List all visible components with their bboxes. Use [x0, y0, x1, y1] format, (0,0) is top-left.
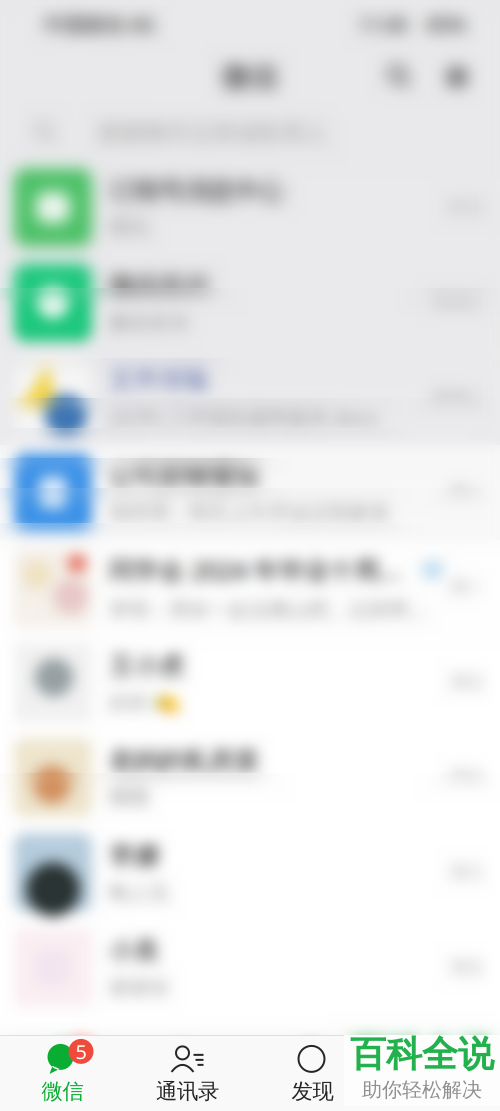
- staticText: 星期二: [433, 387, 484, 408]
- button[interactable]: 搜索聊天记录或联系人: [0, 106, 500, 160]
- staticText: 微信支付: [109, 310, 189, 335]
- staticText: [文件] 工作报告最终版本.docx: [109, 404, 378, 431]
- button[interactable]: 文件传输: [0, 350, 500, 445]
- button[interactable]: 微信支付: [0, 255, 500, 350]
- staticText: 周日: [450, 767, 484, 788]
- staticText: 嗯嗯: [109, 785, 149, 810]
- staticText: 腾讯: [109, 215, 149, 240]
- staticText: 李娜: [109, 840, 159, 871]
- staticText: 周一: [450, 482, 484, 503]
- staticText: 好的 🍋: [109, 690, 180, 715]
- staticText: 小美: [109, 935, 159, 966]
- staticText: 订阅号消息中心: [109, 175, 284, 206]
- staticText: 老妈的私房菜: [109, 745, 259, 776]
- button[interactable]: 通讯录: [125, 1036, 250, 1111]
- button[interactable]: 同学会 2024 年毕业十周年聚会: [0, 540, 500, 635]
- button[interactable]: 5: [0, 1036, 125, 1111]
- staticText: 谢谢你: [109, 975, 169, 1000]
- staticText: 文件传输: [109, 364, 209, 395]
- staticText: 张经理：明天上午开会记得参加: [109, 500, 389, 525]
- staticText: 助你轻松解决: [362, 1077, 482, 1102]
- button[interactable]: 订阅号消息中心: [0, 160, 500, 255]
- button[interactable]: Search: [382, 60, 416, 94]
- staticText: 通讯录: [156, 1078, 219, 1105]
- button[interactable]: 李娜: [0, 825, 500, 920]
- staticText: 周六: [450, 862, 484, 883]
- button[interactable]: 公司群聊通知: [0, 445, 500, 540]
- staticText: 周一: [450, 577, 484, 598]
- staticText: 发现: [291, 1078, 333, 1105]
- button[interactable]: 王小虎: [0, 635, 500, 730]
- staticText: 5: [75, 1038, 86, 1065]
- button[interactable]: 小美: [0, 920, 500, 1015]
- staticText: 同学会 2024 年毕业十周年聚会: [109, 553, 417, 587]
- button[interactable]: 老妈的私房菜: [0, 730, 500, 825]
- staticText: 微信: [41, 1078, 83, 1105]
- staticText: 晚上见: [109, 880, 169, 905]
- button[interactable]: 我: [375, 1036, 500, 1111]
- staticText: 中国移动 4G: [44, 11, 155, 37]
- staticText: 我: [427, 1078, 448, 1105]
- staticText: 微信支付: [109, 270, 209, 301]
- button[interactable]: 发现: [250, 1036, 375, 1111]
- staticText: 微信: [222, 60, 278, 94]
- staticText: 百科全说: [350, 1032, 494, 1076]
- staticText: 11:40 85%: [358, 11, 466, 37]
- staticText: 公司群聊通知: [109, 460, 259, 491]
- staticText: 周日: [450, 672, 484, 693]
- staticText: 李明：周末一起去爬山吧，记得带装备: [109, 596, 442, 622]
- staticText: 周五: [450, 957, 484, 978]
- staticText: 搜索聊天记录或联系人: [98, 119, 328, 147]
- staticText: 王小虎: [109, 650, 184, 681]
- button[interactable]: More: [440, 60, 474, 94]
